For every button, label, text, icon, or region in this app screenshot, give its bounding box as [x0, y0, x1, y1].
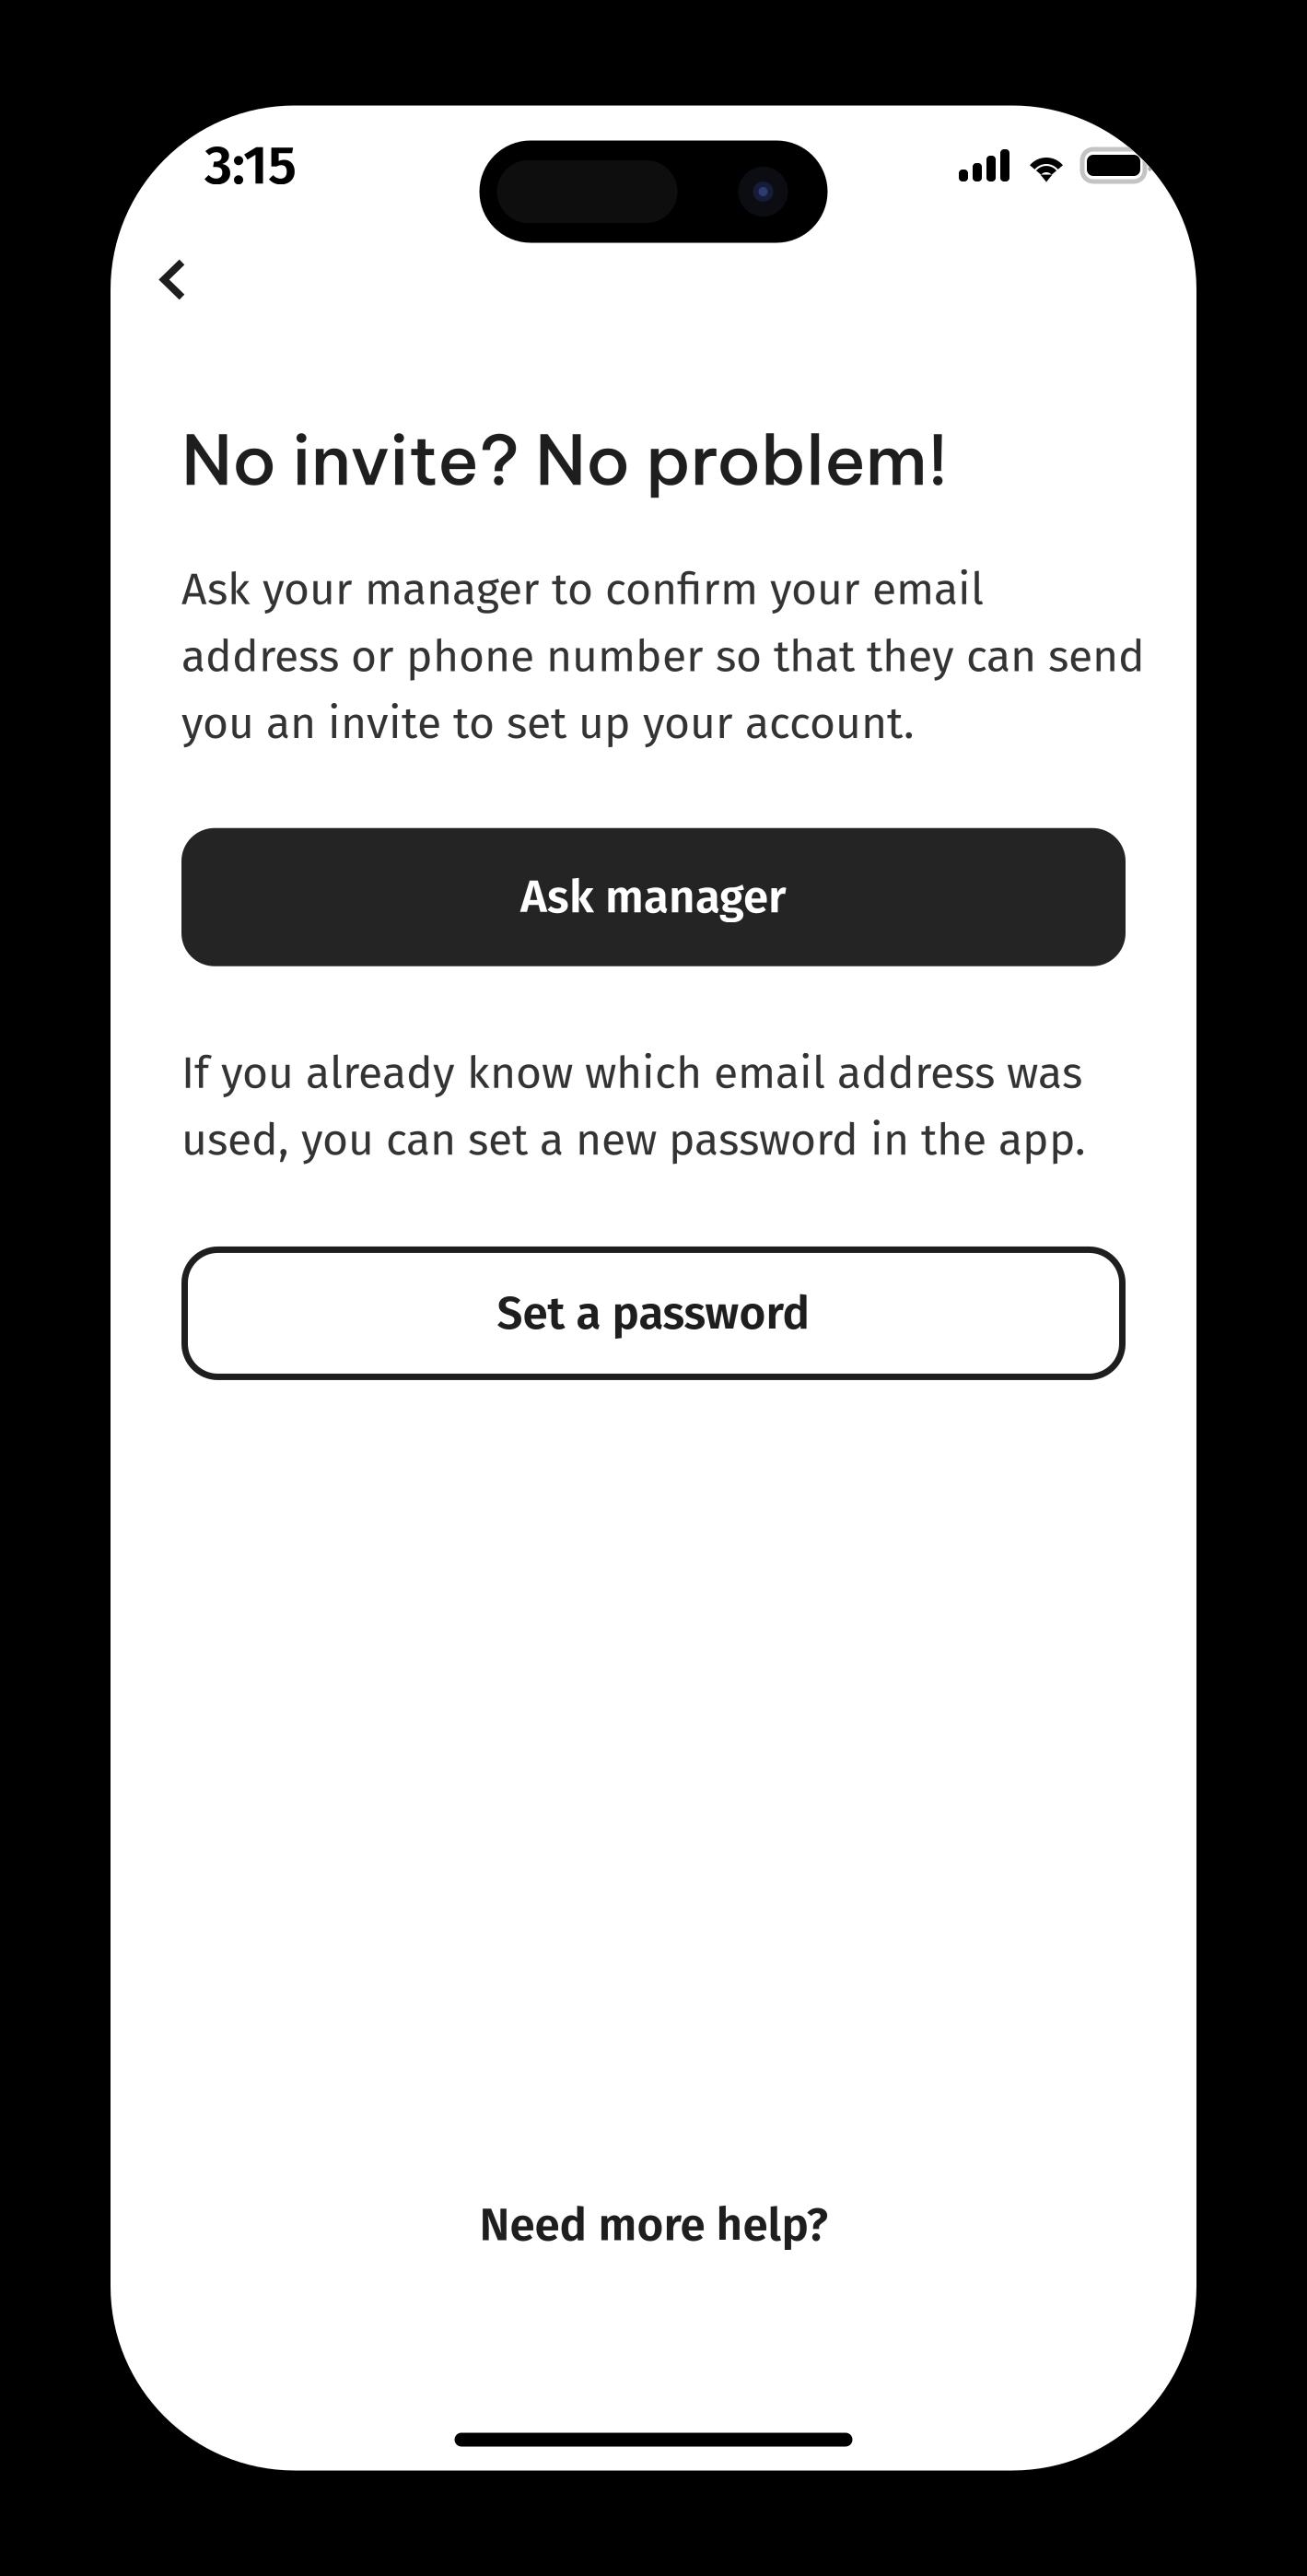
button[interactable]: Need more help? — [424, 2174, 883, 2276]
staticText: Ask your manager to confirm your email a… — [181, 563, 1145, 750]
staticText: 3:15 — [204, 133, 297, 198]
button[interactable]: Ask manager — [181, 828, 1126, 966]
staticText: No invite? No problem! — [181, 416, 948, 503]
button[interactable]: Back — [111, 242, 215, 317]
staticText: If you already know which email address … — [181, 1046, 1086, 1166]
staticText: Ask manager — [520, 870, 787, 924]
button[interactable]: Set a password — [181, 1247, 1126, 1380]
staticText: Need more help? — [479, 2198, 828, 2252]
staticText: Set a password — [497, 1286, 810, 1341]
